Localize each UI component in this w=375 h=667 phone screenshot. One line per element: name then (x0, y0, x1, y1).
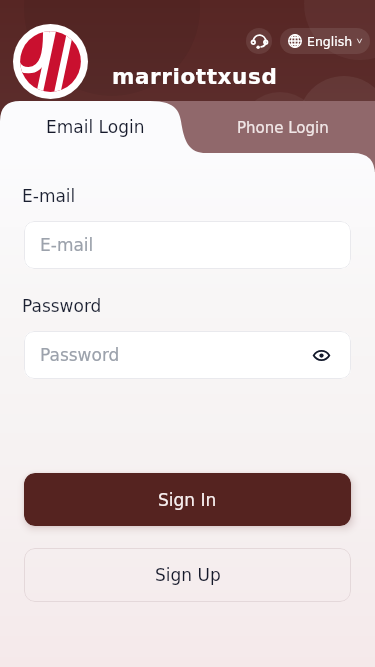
button[interactable]: Sign In (24, 473, 351, 526)
button[interactable]: Phone Login (189, 101, 375, 153)
staticText: English (307, 34, 353, 49)
staticText: Phone Login (237, 119, 329, 136)
staticText: marriottxusd (112, 64, 278, 89)
staticText: E-mail (22, 186, 76, 206)
staticText: Sign Up (155, 565, 221, 585)
staticText: Password (40, 345, 120, 365)
staticText: Email Login (46, 117, 145, 137)
button[interactable]: Show password (308, 342, 334, 368)
staticText: Password (22, 296, 102, 316)
button[interactable]: E-mail (24, 221, 351, 269)
staticText: Sign In (158, 490, 217, 510)
button[interactable]: Password (24, 331, 351, 379)
button[interactable]: English (280, 28, 370, 54)
button[interactable]: Customer support (246, 28, 272, 54)
button[interactable]: Sign Up (24, 548, 351, 602)
staticText: E-mail (40, 235, 94, 255)
button[interactable]: Email Login (0, 101, 190, 153)
